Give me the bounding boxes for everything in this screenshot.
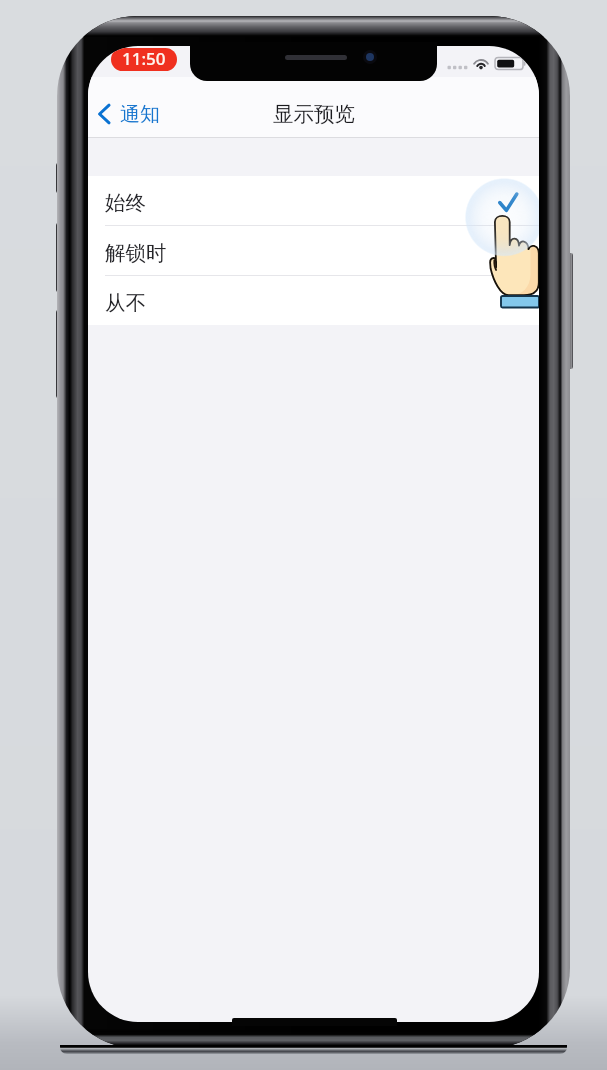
- button[interactable]: 始终: [88, 176, 539, 225]
- button[interactable]: 解锁时: [88, 226, 539, 275]
- button[interactable]: Recording indicator 11:50: [111, 48, 177, 71]
- staticText: 解锁时: [105, 240, 167, 266]
- button[interactable]: 从不: [88, 276, 539, 325]
- staticText: 显示预览: [273, 101, 355, 127]
- staticText: 从不: [105, 290, 146, 316]
- staticText: 通知: [120, 102, 160, 127]
- staticText: 11:50: [122, 48, 166, 70]
- staticText: 始终: [105, 190, 146, 216]
- button[interactable]: 通知: [93, 94, 165, 133]
